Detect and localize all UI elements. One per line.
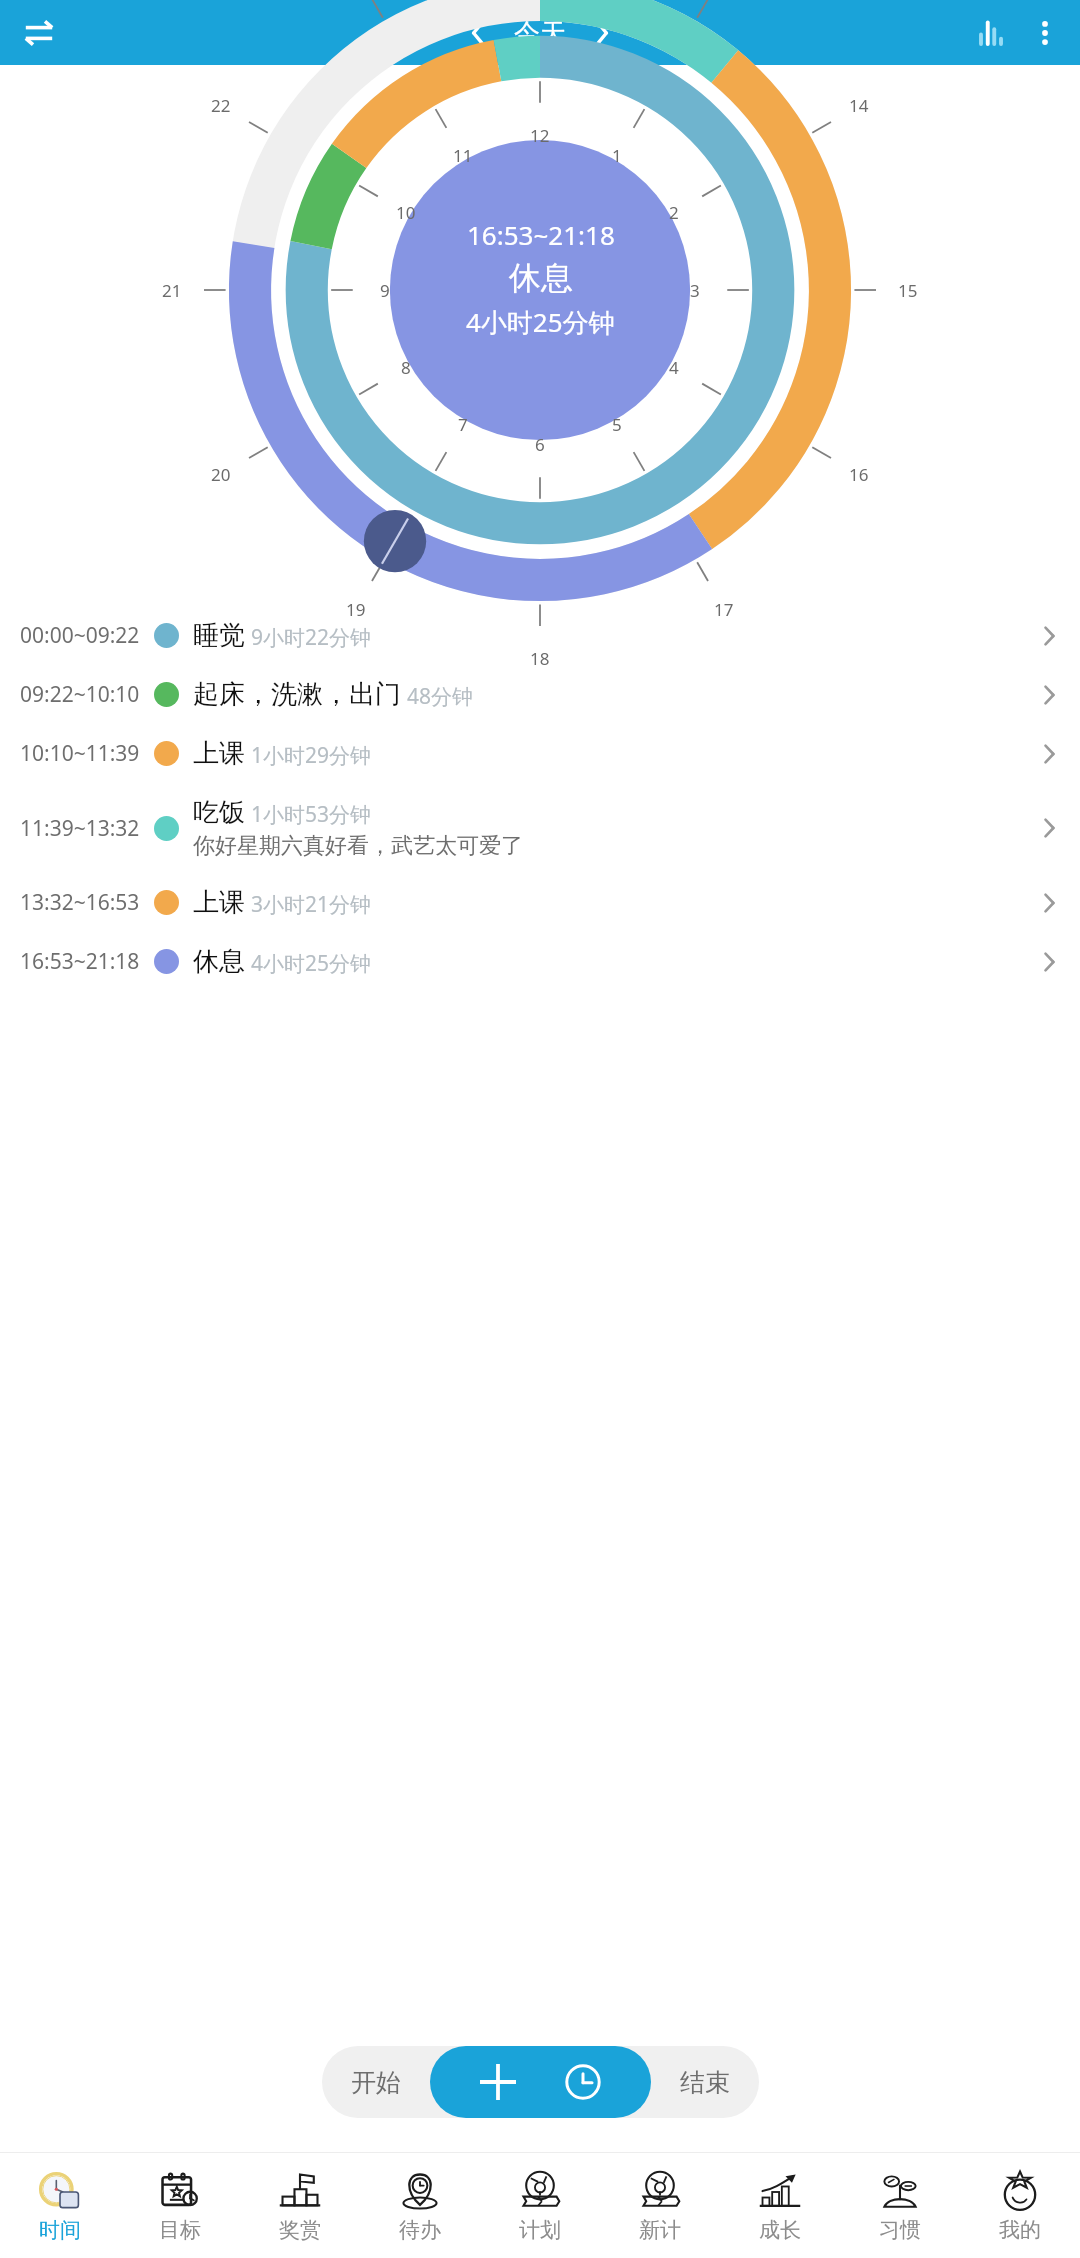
button[interactable]: Add record — [430, 2046, 651, 2118]
staticText: 休息 — [509, 258, 573, 298]
button[interactable]: 13:32~16:53 — [0, 873, 1080, 932]
button[interactable]: 结束 — [651, 2046, 759, 2118]
staticText: 7 — [458, 413, 468, 436]
staticText: 10 — [396, 201, 416, 224]
button[interactable]: 成长 — [720, 2153, 840, 2258]
staticText: 17 — [714, 598, 734, 621]
button[interactable]: More options — [1018, 6, 1072, 60]
button[interactable]: 时间 — [0, 2153, 120, 2258]
button[interactable]: 09:22~10:10 — [0, 665, 1080, 724]
button[interactable]: 我的 — [960, 2153, 1080, 2258]
staticText: 今天 — [514, 17, 566, 50]
staticText: 起床，洗漱，出门 — [193, 678, 401, 711]
staticText: 你好星期六真好看，武艺太可爱了 — [193, 832, 523, 860]
staticText: 4小时25分钟 — [466, 304, 615, 340]
staticText: 我的 — [999, 2217, 1041, 2243]
staticText: 5 — [612, 413, 622, 436]
staticText: 1 — [612, 144, 622, 167]
staticText: 结束 — [680, 2067, 730, 2098]
staticText: 16:53~21:18 — [20, 947, 140, 976]
staticText: 13:32~16:53 — [20, 888, 140, 917]
staticText: 习惯 — [879, 2217, 921, 2243]
staticText: 16 — [849, 463, 869, 486]
staticText: 16:53~21:18 — [467, 217, 615, 252]
staticText: 时间 — [39, 2217, 81, 2243]
button[interactable]: 11:39~13:32 — [0, 783, 1080, 873]
staticText: 3 — [690, 279, 700, 302]
staticText: 奖赏 — [279, 2217, 321, 2243]
staticText: 10:10~11:39 — [20, 739, 140, 768]
button[interactable]: 新计 — [600, 2153, 720, 2258]
button[interactable]: Switch view — [12, 6, 66, 60]
button[interactable]: 计划 — [480, 2153, 600, 2258]
staticText: 2 — [669, 201, 679, 224]
staticText: 1小时29分钟 — [251, 741, 372, 770]
button[interactable]: Next day — [578, 9, 626, 57]
button[interactable]: 习惯 — [840, 2153, 960, 2258]
button[interactable]: Previous day — [454, 9, 502, 57]
staticText: 22 — [211, 94, 231, 117]
button[interactable]: Statistics — [964, 6, 1018, 60]
staticText: 4小时25分钟 — [251, 949, 372, 978]
staticText: 1小时53分钟 — [251, 800, 372, 829]
staticText: 成长 — [759, 2217, 801, 2243]
button[interactable]: 待办 — [360, 2153, 480, 2258]
staticText: 20 — [211, 463, 231, 486]
staticText: 12 — [530, 124, 550, 147]
staticText: 上课 — [193, 886, 245, 919]
staticText: 8 — [401, 356, 411, 379]
staticText: 睡觉 — [193, 619, 245, 652]
button[interactable]: 16:53~21:18 — [0, 932, 1080, 991]
staticText: 00:00~09:22 — [20, 621, 140, 650]
staticText: 11:39~13:32 — [20, 814, 140, 843]
staticText: 3小时21分钟 — [251, 890, 372, 919]
staticText: 09:22~10:10 — [20, 680, 140, 709]
staticText: 待办 — [399, 2217, 441, 2243]
staticText: 48分钟 — [407, 682, 474, 711]
staticText: 9 — [380, 279, 390, 302]
staticText: 15 — [898, 279, 918, 302]
staticText: 目标 — [159, 2217, 201, 2243]
staticText: 9小时22分钟 — [251, 623, 372, 652]
staticText: 计划 — [519, 2217, 561, 2243]
button[interactable]: 奖赏 — [240, 2153, 360, 2258]
staticText: 开始 — [351, 2067, 401, 2098]
button[interactable]: 10:10~11:39 — [0, 724, 1080, 783]
button[interactable]: 开始 — [322, 2046, 430, 2118]
staticText: 上课 — [193, 737, 245, 770]
staticText: 14 — [849, 94, 869, 117]
button[interactable]: 00:00~09:22 — [0, 606, 1080, 665]
staticText: 新计 — [639, 2217, 681, 2243]
staticText: 6 — [535, 433, 545, 456]
staticText: 休息 — [193, 945, 245, 978]
staticText: 吃饭 — [193, 796, 245, 829]
staticText: 4 — [669, 356, 679, 379]
staticText: 18 — [530, 647, 550, 670]
button[interactable]: 目标 — [120, 2153, 240, 2258]
staticText: 19 — [346, 598, 366, 621]
staticText: 11 — [453, 144, 473, 167]
staticText: 21 — [162, 279, 182, 302]
